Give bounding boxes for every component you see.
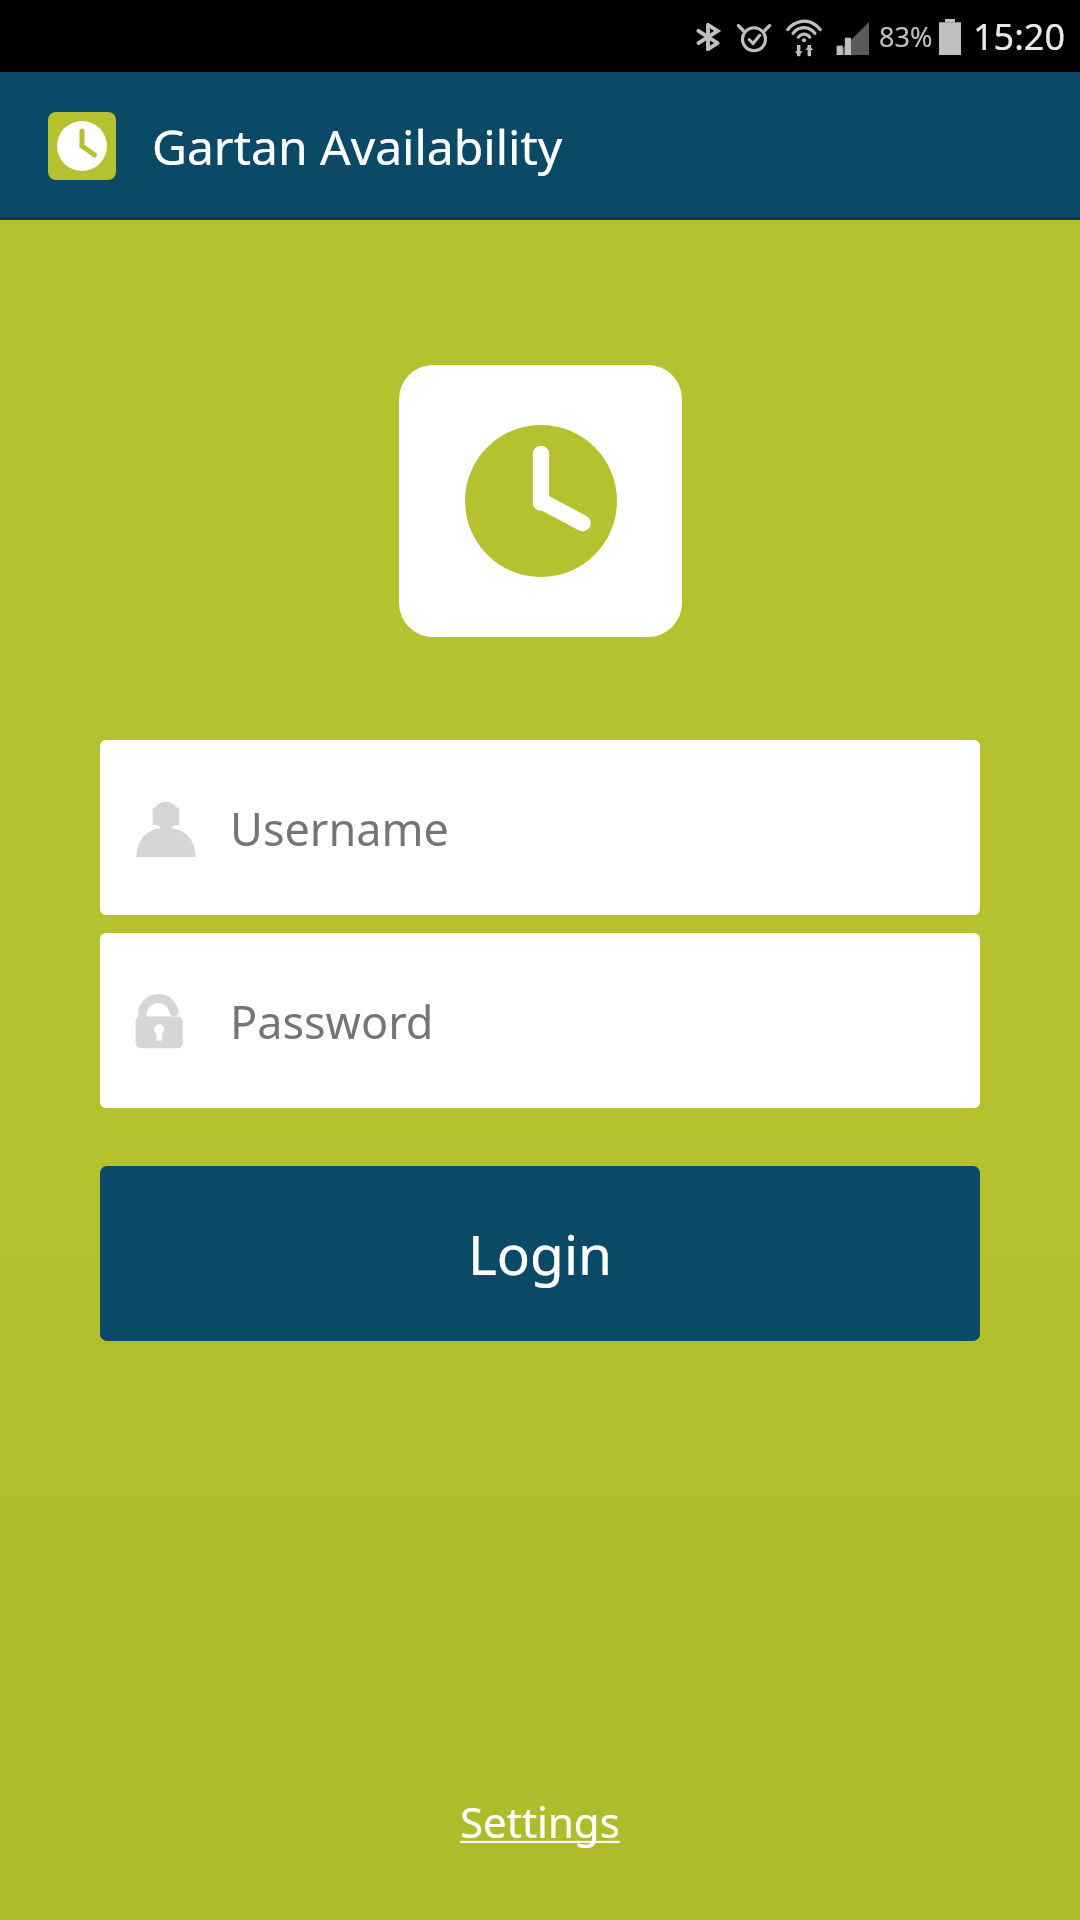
button[interactable]: Settings (432, 1779, 648, 1864)
staticText: Settings (460, 1793, 620, 1850)
staticText: Login (468, 1216, 613, 1291)
staticText: Username (230, 798, 449, 859)
staticText: Password (230, 991, 434, 1052)
button[interactable]: Login (100, 1166, 980, 1341)
staticText: Gartan Availability (152, 114, 563, 179)
staticText: 83% (879, 18, 933, 55)
button[interactable]: Username (100, 740, 980, 915)
staticText: 15:20 (973, 12, 1066, 61)
other: App icon (48, 112, 116, 180)
button[interactable]: Password (100, 933, 980, 1108)
